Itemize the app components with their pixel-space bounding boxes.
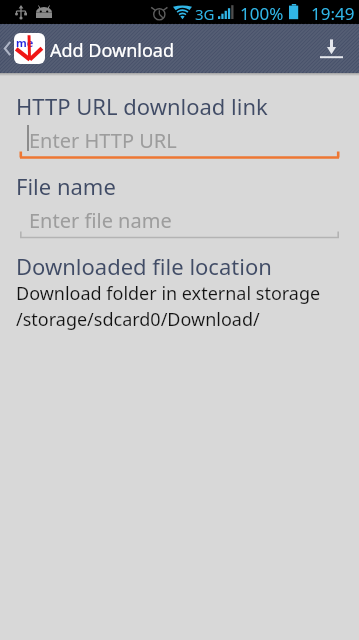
button[interactable]: Enter file name [0,203,359,239]
staticText: Enter HTTP URL [29,127,177,154]
staticText: Add Download [50,38,174,63]
staticText: me [16,35,34,50]
button[interactable]: Enter HTTP URL [0,123,359,159]
button[interactable]: Back [0,24,14,73]
staticText: File name [16,171,116,201]
staticText: Downloaded file location [16,251,272,281]
staticText: 19:49 [311,2,355,25]
staticText: HTTP URL download link [16,91,268,121]
staticText: Download folder in external storage [16,281,321,306]
staticText: /storage/sdcard0/Download/ [16,307,260,332]
staticText: Enter file name [29,207,172,234]
staticText: 3G [195,4,215,24]
button[interactable]: Download [308,24,354,73]
staticText: 100% [240,2,284,25]
